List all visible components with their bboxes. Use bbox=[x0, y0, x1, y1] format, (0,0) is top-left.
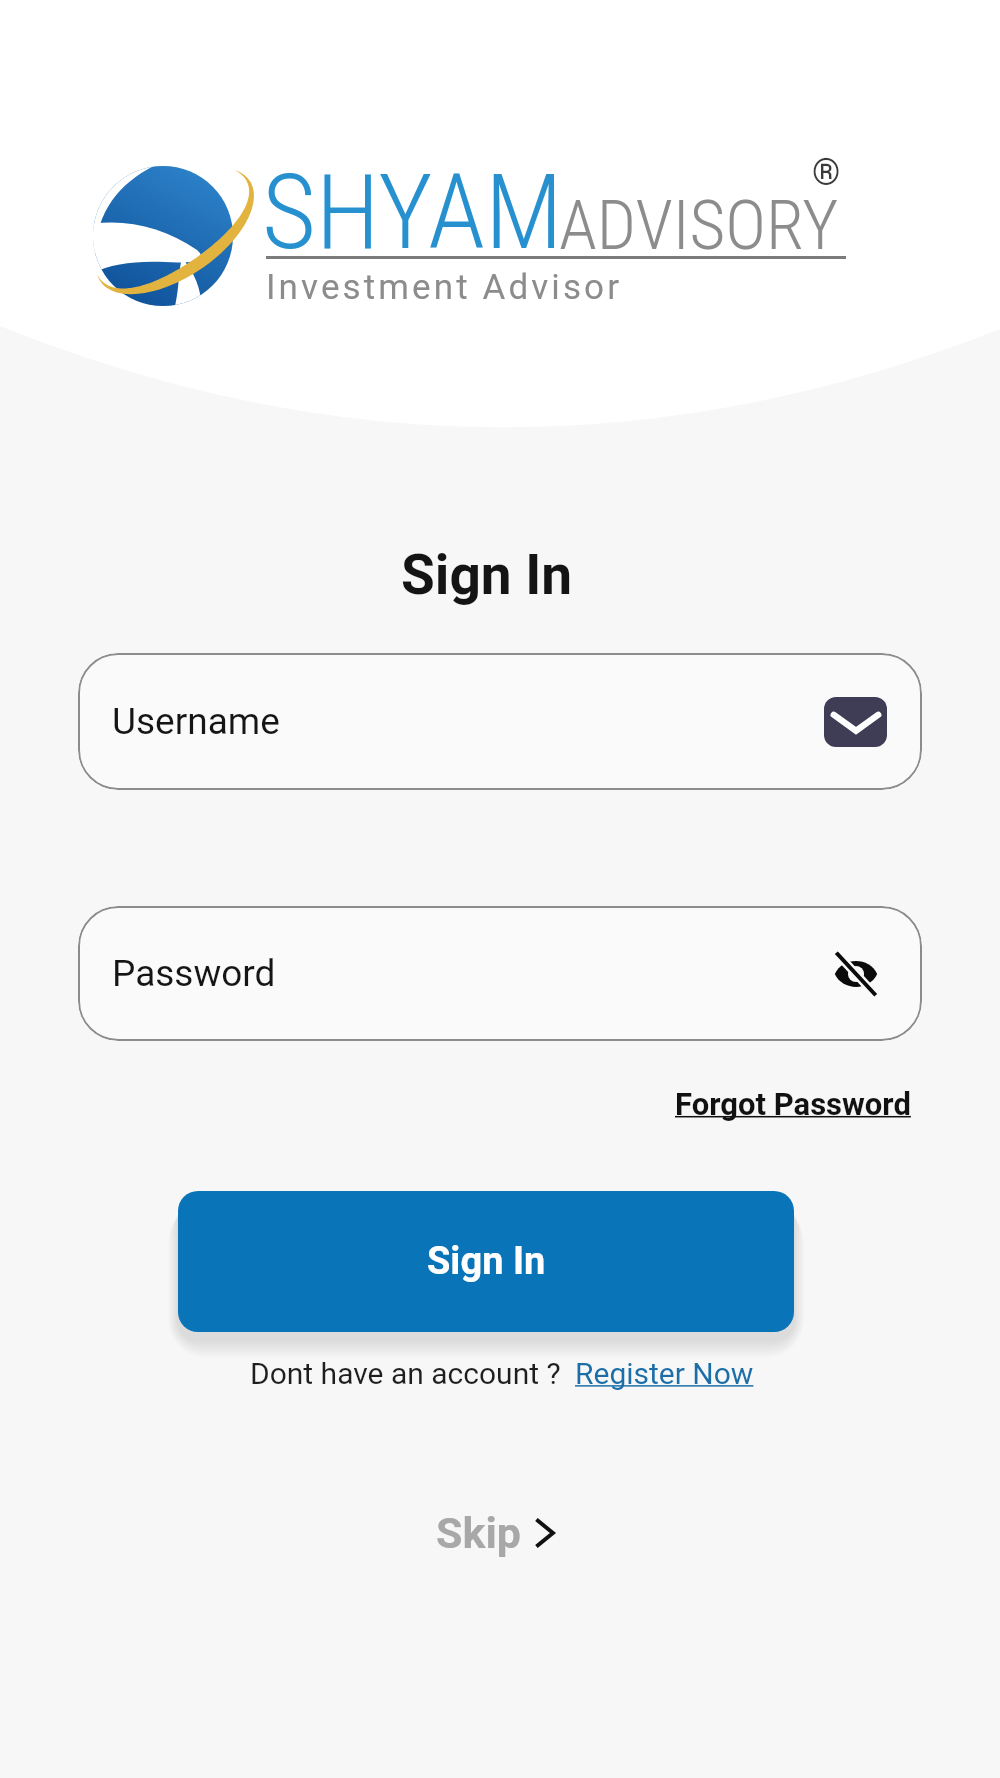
staticText: ® bbox=[812, 152, 841, 194]
staticText: SHYAM bbox=[262, 152, 563, 274]
button[interactable]: Forgot Password bbox=[675, 1086, 911, 1122]
staticText: Password bbox=[112, 952, 276, 995]
button[interactable]: Username bbox=[78, 653, 922, 790]
staticText: Sign In bbox=[401, 543, 573, 607]
other: Show password bbox=[833, 954, 879, 994]
staticText: Username bbox=[112, 700, 280, 743]
staticText: Forgot Password bbox=[675, 1086, 911, 1122]
staticText: Investment Advisor bbox=[266, 267, 623, 308]
button[interactable]: Skip bbox=[436, 1508, 556, 1558]
staticText: Sign In bbox=[427, 1239, 546, 1284]
staticText: Skip bbox=[436, 1508, 522, 1558]
button[interactable]: Register Now bbox=[575, 1356, 754, 1391]
button[interactable]: Password bbox=[78, 906, 922, 1041]
button[interactable]: Sign In bbox=[178, 1191, 794, 1332]
staticText: ADVISORY bbox=[559, 185, 839, 266]
other: Email bbox=[824, 697, 887, 747]
staticText: Dont have an account ? bbox=[250, 1356, 561, 1391]
staticText: Register Now bbox=[575, 1356, 754, 1391]
